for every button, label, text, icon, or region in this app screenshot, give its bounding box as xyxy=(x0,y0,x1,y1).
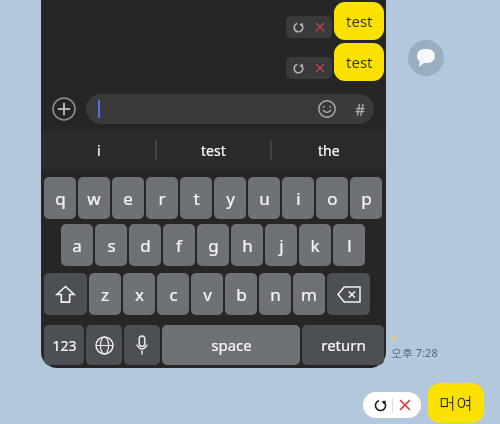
staticText: 오후 7:28 xyxy=(391,345,438,360)
staticText: z xyxy=(101,283,109,306)
staticText: i xyxy=(296,187,301,210)
button[interactable]: v xyxy=(191,273,223,315)
button[interactable]: y xyxy=(214,177,246,219)
button[interactable]: Voice input xyxy=(124,325,160,365)
staticText: u xyxy=(259,187,270,210)
button[interactable]: b xyxy=(225,273,257,315)
button[interactable]: m xyxy=(293,273,325,315)
staticText: h xyxy=(242,234,253,257)
button[interactable]: z xyxy=(89,273,121,315)
staticText: i xyxy=(97,141,101,160)
button[interactable]: Add attachment xyxy=(52,97,76,121)
staticText: k xyxy=(310,234,320,257)
staticText: v xyxy=(203,283,212,306)
button[interactable]: Delete message xyxy=(310,17,330,37)
staticText: m xyxy=(301,283,317,306)
button[interactable]: Hashtag xyxy=(350,99,370,119)
button[interactable]: o xyxy=(316,177,348,219)
button[interactable]: Resend message xyxy=(288,58,308,78)
staticText: test xyxy=(346,52,373,72)
button[interactable]: j xyxy=(265,224,297,266)
staticText: x xyxy=(135,283,144,306)
staticText: o xyxy=(327,187,338,210)
staticText: q xyxy=(55,187,66,210)
button[interactable]: a xyxy=(61,224,93,266)
button[interactable]: e xyxy=(112,177,144,219)
button[interactable]: x xyxy=(123,273,155,315)
button[interactable]: p xyxy=(350,177,382,219)
button[interactable]: c xyxy=(157,273,189,315)
button[interactable]: Backspace xyxy=(327,273,370,315)
staticText: t xyxy=(193,187,200,210)
button[interactable]: f xyxy=(163,224,195,266)
button[interactable]: Delete xyxy=(393,393,417,417)
button[interactable]: s xyxy=(95,224,127,266)
staticText: # xyxy=(355,99,366,119)
staticText: test xyxy=(346,11,373,31)
button[interactable]: t xyxy=(180,177,212,219)
staticText: e xyxy=(123,187,133,210)
staticText: space xyxy=(211,335,252,355)
button[interactable]: u xyxy=(248,177,280,219)
staticText: the xyxy=(318,141,340,160)
staticText: 123 xyxy=(52,336,77,355)
button[interactable]: q xyxy=(44,177,76,219)
button[interactable]: space xyxy=(162,325,300,365)
staticText: f xyxy=(176,234,182,257)
button[interactable]: test xyxy=(334,43,384,81)
button[interactable]: 123 xyxy=(44,325,84,365)
button[interactable]: h xyxy=(231,224,263,266)
button[interactable]: test xyxy=(334,2,384,40)
staticText: g xyxy=(208,234,219,257)
button[interactable]: w xyxy=(78,177,110,219)
button[interactable]: d xyxy=(129,224,161,266)
button[interactable]: Emoji xyxy=(318,100,336,118)
button[interactable]: test xyxy=(156,130,271,170)
staticText: l xyxy=(347,234,352,257)
button[interactable]: k xyxy=(299,224,331,266)
button[interactable]: Resend message xyxy=(288,17,308,37)
button[interactable]: return xyxy=(302,325,384,365)
button[interactable]: Emoji xyxy=(86,94,374,124)
staticText: 머여 xyxy=(439,393,473,414)
button[interactable]: n xyxy=(259,273,291,315)
button[interactable]: Change keyboard language xyxy=(86,325,122,365)
staticText: c xyxy=(169,283,178,306)
button[interactable]: l xyxy=(333,224,365,266)
button[interactable]: Open chat xyxy=(408,40,444,76)
staticText: r xyxy=(158,187,166,210)
button[interactable]: r xyxy=(146,177,178,219)
staticText: 1 xyxy=(391,332,397,344)
button[interactable]: Shift xyxy=(44,273,87,315)
staticText: return xyxy=(321,335,366,355)
button[interactable]: the xyxy=(271,130,386,170)
staticText: w xyxy=(87,187,101,210)
button[interactable]: i xyxy=(282,177,314,219)
button[interactable]: g xyxy=(197,224,229,266)
staticText: p xyxy=(361,187,372,210)
button[interactable]: Resend xyxy=(368,393,392,417)
button[interactable]: i xyxy=(41,130,156,170)
staticText: y xyxy=(226,187,235,210)
staticText: d xyxy=(140,234,151,257)
staticText: s xyxy=(107,234,116,257)
staticText: b xyxy=(236,283,247,306)
staticText: test xyxy=(201,141,226,160)
button[interactable]: Delete message xyxy=(310,58,330,78)
button[interactable]: 머여 xyxy=(428,383,484,423)
staticText: a xyxy=(72,234,82,257)
staticText: n xyxy=(270,283,281,306)
staticText: j xyxy=(279,234,284,257)
